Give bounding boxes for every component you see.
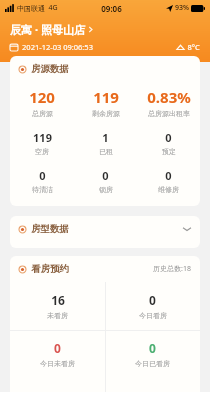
- staticText: 今日未看房: [40, 359, 75, 368]
- button[interactable]: 辰寓 · 照母山店: [10, 22, 93, 37]
- button[interactable]: 119: [10, 128, 74, 158]
- staticText: 已租: [99, 147, 113, 156]
- button[interactable]: 0: [137, 128, 200, 158]
- staticText: 0: [102, 168, 109, 183]
- staticText: 空房: [35, 147, 49, 156]
- staticText: 0: [149, 340, 156, 356]
- staticText: 93%: [175, 3, 189, 13]
- staticText: 历史总数:18: [153, 264, 191, 274]
- staticText: 8°C: [187, 42, 200, 52]
- staticText: 中国联通: [17, 4, 45, 13]
- staticText: 今日已看房: [135, 359, 170, 368]
- staticText: 0: [54, 340, 61, 356]
- staticText: 预定: [162, 147, 176, 156]
- staticText: 0.83%: [147, 87, 191, 107]
- staticText: 看房预约: [31, 263, 69, 275]
- staticText: 房源数据: [31, 63, 69, 75]
- staticText: 16: [51, 292, 65, 308]
- staticText: 1: [102, 130, 109, 145]
- button[interactable]: 0: [137, 166, 200, 196]
- button[interactable]: 1: [74, 128, 137, 158]
- staticText: 房型数据: [31, 223, 69, 235]
- staticText: 锁房: [99, 185, 113, 194]
- staticText: 120: [29, 87, 55, 107]
- staticText: 0: [165, 168, 172, 183]
- other: Expand: [183, 225, 191, 233]
- button[interactable]: 16: [10, 282, 105, 330]
- staticText: 剩余房源: [92, 109, 120, 118]
- staticText: 0: [165, 130, 172, 145]
- button[interactable]: 120: [10, 85, 74, 120]
- staticText: 0: [149, 292, 156, 308]
- staticText: 未看房: [47, 311, 68, 320]
- staticText: 119: [93, 87, 119, 107]
- staticText: 119: [33, 130, 52, 145]
- staticText: 4G: [48, 3, 58, 13]
- button[interactable]: 0.83%: [137, 85, 200, 120]
- button[interactable]: 0: [74, 166, 137, 196]
- staticText: 09:06: [101, 3, 122, 14]
- button[interactable]: 0: [10, 166, 74, 196]
- staticText: 0: [39, 168, 46, 183]
- staticText: 辰寓 · 照母山店: [10, 22, 85, 37]
- staticText: 总房源出租率: [148, 109, 190, 118]
- staticText: 待清洁: [32, 185, 53, 194]
- button[interactable]: 房型数据: [10, 216, 200, 248]
- button[interactable]: 0: [10, 331, 105, 377]
- staticText: 维修房: [158, 185, 179, 194]
- button[interactable]: 119: [74, 85, 137, 120]
- staticText: 2021-12-03 09:06:53: [22, 42, 93, 52]
- staticText: 总房源: [32, 109, 53, 118]
- button[interactable]: 0: [105, 282, 200, 330]
- button[interactable]: 0: [105, 331, 200, 377]
- staticText: 今日看房: [139, 311, 167, 320]
